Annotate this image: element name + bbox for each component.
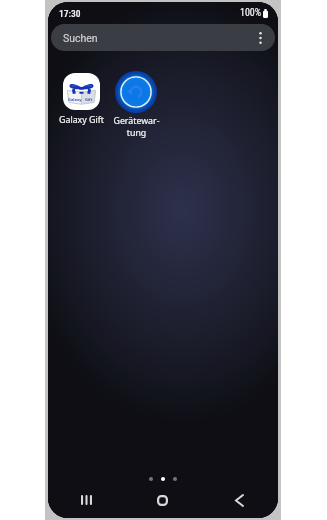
staticText: 17:30 (59, 8, 81, 19)
staticText: 100% (240, 7, 262, 19)
button[interactable]: Home (124, 485, 201, 515)
staticText: Suchen (63, 32, 98, 44)
button[interactable]: Gerätewar- tung (108, 71, 164, 139)
staticText: Gift (85, 97, 93, 102)
button[interactable]: Recent apps (48, 485, 124, 515)
button[interactable]: Galaxy (53, 73, 109, 126)
staticText: Gerätewar- tung (113, 115, 160, 139)
staticText: Galaxy Gift (59, 114, 104, 126)
button[interactable]: Back (201, 485, 278, 515)
button[interactable]: Suchen (51, 24, 275, 51)
button[interactable]: More options (251, 29, 269, 47)
staticText: Galaxy (68, 97, 82, 102)
